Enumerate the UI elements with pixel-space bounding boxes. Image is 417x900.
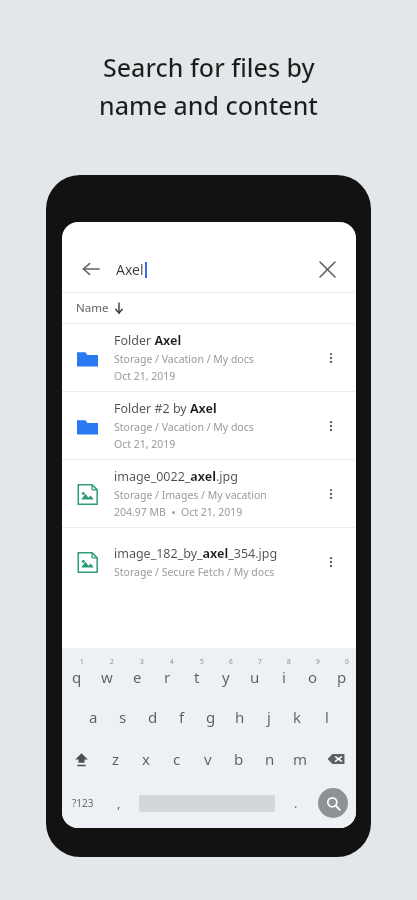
button[interactable]: d [138, 696, 167, 738]
staticText: 9 [316, 657, 320, 666]
staticText: 1 [80, 657, 84, 666]
button[interactable]: . [281, 780, 310, 826]
button[interactable]: Shift [62, 738, 101, 780]
staticText: x [142, 749, 150, 769]
button[interactable]: l [312, 696, 341, 738]
staticText: Oct 21, 2019 [181, 505, 243, 519]
staticText: a [89, 707, 98, 727]
staticText: , [117, 794, 121, 812]
staticText: f [179, 707, 185, 727]
button[interactable]: More options [318, 413, 344, 439]
button[interactable]: image_0022_axel.jpg [62, 460, 356, 527]
staticText: c [173, 749, 181, 769]
button[interactable]: 9 [298, 654, 327, 696]
staticText: m [293, 749, 308, 769]
staticText: w [101, 667, 113, 687]
button[interactable]: v [192, 738, 223, 780]
staticText: e [133, 667, 142, 687]
staticText: ?123 [72, 796, 94, 810]
button[interactable]: Back [76, 254, 106, 284]
staticText: h [235, 707, 245, 727]
button[interactable]: s [108, 696, 138, 738]
button[interactable]: ?123 [62, 780, 104, 826]
staticText: 2 [110, 657, 114, 666]
staticText: Storage / Images / My vacation [114, 488, 267, 502]
staticText: Name [76, 300, 109, 316]
staticText: 204.97 MB [114, 505, 166, 519]
staticText: p [337, 667, 347, 687]
staticText: o [308, 667, 318, 687]
button[interactable]: Back [62, 246, 356, 292]
button[interactable]: 4 [152, 654, 182, 696]
button[interactable]: c [161, 738, 192, 780]
button[interactable]: 2 [92, 654, 122, 696]
staticText: 4 [170, 657, 174, 666]
staticText: r [164, 667, 171, 687]
button[interactable]: More options [318, 345, 344, 371]
staticText: d [148, 707, 158, 727]
staticText: image_182_by_axel_354.jpg [114, 545, 278, 562]
staticText: v [204, 749, 212, 769]
button[interactable]: 6 [211, 654, 240, 696]
staticText: 3 [140, 657, 144, 666]
button[interactable]: Backspace [316, 738, 356, 780]
staticText: b [234, 749, 244, 769]
button[interactable]: m [285, 738, 316, 780]
button[interactable]: j [254, 696, 283, 738]
button[interactable]: 8 [269, 654, 298, 696]
staticText: Storage / Secure Fetch / My docs [114, 565, 275, 579]
staticText: s [119, 707, 127, 727]
button[interactable]: b [223, 738, 254, 780]
staticText: 8 [287, 657, 291, 666]
button[interactable]: n [254, 738, 285, 780]
staticText: g [206, 707, 216, 727]
staticText: u [250, 667, 260, 687]
staticText: l [325, 707, 329, 727]
button[interactable]: , [104, 780, 133, 826]
staticText: Folder #2 by Axel [114, 400, 217, 417]
button[interactable]: a [78, 696, 108, 738]
button[interactable]: x [131, 738, 161, 780]
staticText: Oct 21, 2019 [114, 369, 176, 383]
button[interactable]: f [167, 696, 196, 738]
staticText: Oct 21, 2019 [114, 437, 176, 451]
button[interactable]: g [196, 696, 225, 738]
staticText: k [293, 707, 302, 727]
button[interactable]: 7 [240, 654, 269, 696]
staticText: n [265, 749, 275, 769]
staticText: y [222, 667, 230, 687]
button[interactable]: h [225, 696, 254, 738]
staticText: Storage / Vacation / My docs [114, 420, 254, 434]
staticText: q [72, 667, 82, 687]
staticText: 6 [229, 657, 233, 666]
button[interactable]: 1 [62, 654, 92, 696]
button[interactable]: Clear search [312, 254, 342, 284]
staticText: name and content [99, 88, 318, 122]
staticText: z [112, 749, 120, 769]
staticText: t [194, 667, 200, 687]
button[interactable]: Search [310, 780, 356, 826]
staticText: image_0022_axel.jpg [114, 468, 238, 485]
staticText: Search for files by [103, 50, 315, 84]
staticText: 7 [258, 657, 262, 666]
button[interactable]: Name [62, 293, 356, 323]
button[interactable]: 0 [327, 654, 356, 696]
staticText: j [267, 707, 271, 727]
staticText: i [282, 667, 286, 687]
staticText: . [294, 794, 298, 812]
button[interactable]: More options [318, 549, 344, 575]
button[interactable]: Space [133, 780, 281, 826]
staticText: 5 [200, 657, 204, 666]
button[interactable]: Folder Axel [62, 324, 356, 391]
button[interactable]: More options [318, 481, 344, 507]
staticText: Storage / Vacation / My docs [114, 352, 254, 366]
button[interactable]: image_182_by_axel_354.jpg [62, 528, 356, 595]
button[interactable]: 3 [122, 654, 152, 696]
button[interactable]: Folder #2 by Axel [62, 392, 356, 459]
staticText: Folder Axel [114, 332, 182, 349]
button[interactable]: 5 [182, 654, 211, 696]
staticText: Axel [116, 260, 144, 279]
button[interactable]: z [101, 738, 131, 780]
staticText: 0 [345, 657, 349, 666]
button[interactable]: k [283, 696, 312, 738]
